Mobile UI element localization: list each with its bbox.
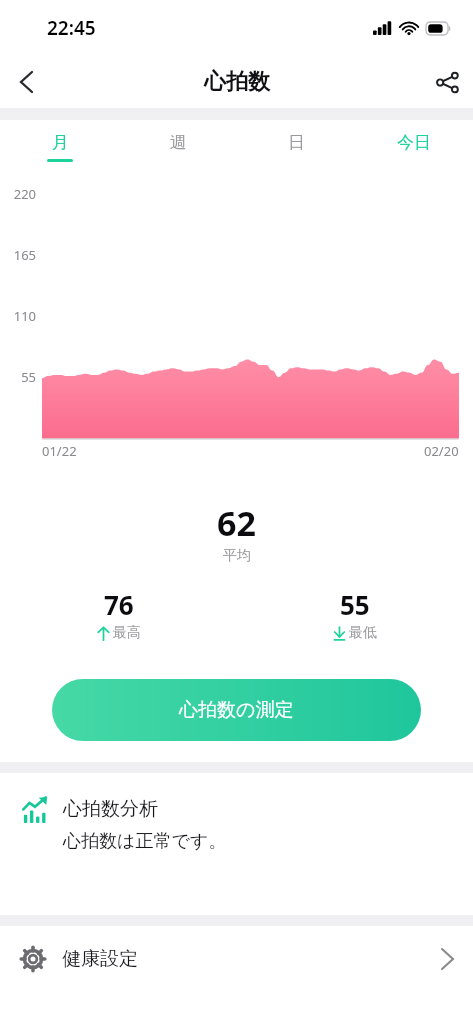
button[interactable]: Back <box>0 56 52 108</box>
button[interactable]: 健康設定 <box>0 926 473 992</box>
staticText: 最高 <box>113 624 141 642</box>
staticText: 220 <box>0 185 36 203</box>
staticText: 月 <box>52 132 69 153</box>
staticText: 心拍数分析 <box>63 797 158 821</box>
button[interactable]: 週 <box>119 120 237 174</box>
button[interactable]: 日 <box>237 120 355 174</box>
button[interactable]: Share <box>421 56 473 108</box>
staticText: 55 <box>0 368 36 386</box>
staticText: 最低 <box>349 624 377 642</box>
staticText: 02/20 <box>424 442 459 460</box>
staticText: 心拍数の測定 <box>179 698 294 722</box>
staticText: 健康設定 <box>62 947 138 971</box>
staticText: 55 <box>340 587 370 622</box>
button[interactable]: 月 <box>0 120 119 174</box>
staticText: 平均 <box>223 547 251 565</box>
button[interactable]: 心拍数の測定 <box>52 679 421 741</box>
staticText: 22:45 <box>47 15 96 41</box>
staticText: 心拍数は正常です。 <box>63 830 227 853</box>
staticText: 心拍数 <box>204 68 270 96</box>
staticText: 日 <box>288 132 305 153</box>
staticText: 165 <box>0 246 36 264</box>
staticText: 週 <box>170 132 187 153</box>
button[interactable]: 今日 <box>355 120 473 174</box>
button[interactable]: 心拍数分析 <box>0 773 473 915</box>
staticText: 今日 <box>397 132 431 153</box>
staticText: 62 <box>217 500 256 546</box>
staticText: 01/22 <box>42 442 77 460</box>
staticText: 110 <box>0 307 36 325</box>
staticText: 76 <box>104 587 134 622</box>
